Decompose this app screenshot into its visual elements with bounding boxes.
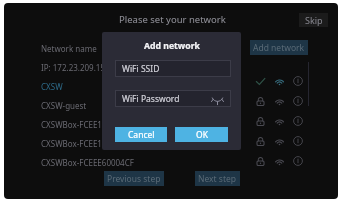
button[interactable]: Previous step [104, 171, 164, 186]
staticText: CXSWBox-FCEEE60004CF [41, 157, 134, 168]
staticText: CXSWBox-FCEE1 [41, 119, 102, 130]
staticText: Please set your network [119, 13, 226, 26]
button[interactable]: OK [175, 127, 228, 142]
button[interactable]: WiFi Password [115, 90, 231, 107]
staticText: Skip [305, 14, 323, 26]
staticText: OK [196, 129, 208, 141]
button[interactable]: Cancel [115, 127, 167, 142]
staticText: CXSW-guest [41, 100, 87, 111]
staticText: CXSWBox-FCEE1 [41, 138, 102, 149]
staticText: Network name [41, 43, 97, 54]
staticText: WiFi SSID [122, 63, 160, 75]
staticText: WiFi Password [122, 93, 180, 105]
button[interactable]: WiFi SSID [115, 60, 231, 77]
staticText: Add network [144, 40, 200, 52]
staticText: Add network [253, 42, 305, 54]
staticText: Next step [198, 173, 237, 185]
button[interactable]: Show password [210, 92, 224, 106]
staticText: IP: 172.23.209.15 [41, 62, 105, 73]
button[interactable]: Next step [195, 171, 240, 186]
staticText: CXSW [41, 81, 63, 92]
staticText: Cancel [128, 129, 155, 141]
staticText: Previous step [107, 173, 161, 185]
button[interactable]: Add network [250, 40, 308, 55]
button[interactable]: Skip [299, 13, 328, 27]
